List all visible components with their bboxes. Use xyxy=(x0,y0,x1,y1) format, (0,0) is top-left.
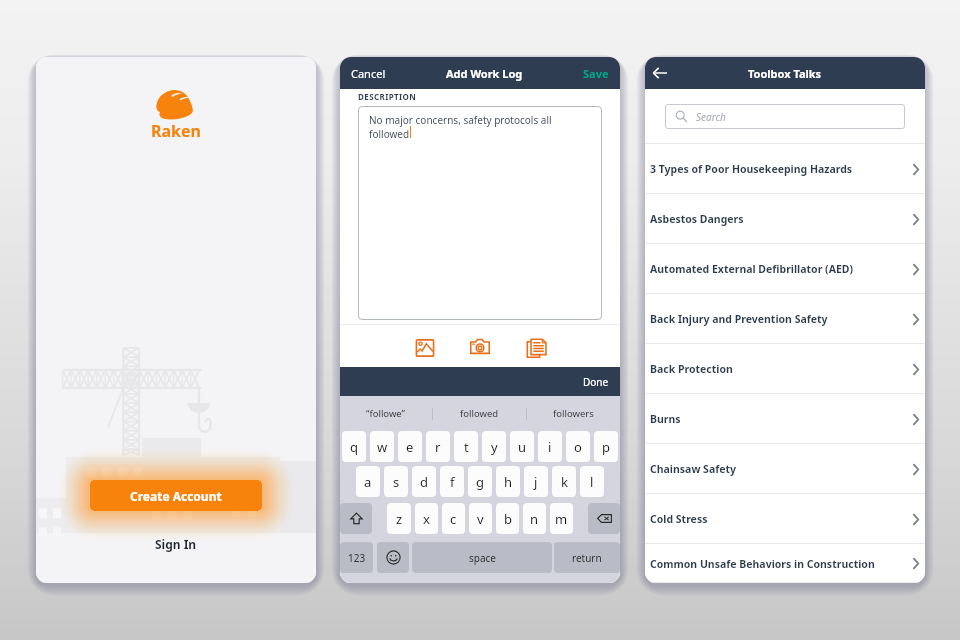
button[interactable]: s xyxy=(384,466,408,497)
staticText: m xyxy=(555,510,568,528)
button[interactable]: v xyxy=(469,503,492,534)
button[interactable]: Create Account xyxy=(90,480,262,511)
staticText: g xyxy=(476,473,484,491)
staticText: o xyxy=(574,438,582,456)
staticText: DESCRIPTION xyxy=(358,91,417,102)
button[interactable]: Back Injury and Prevention Safety xyxy=(645,294,925,344)
staticText: y xyxy=(491,438,498,456)
button[interactable]: j xyxy=(524,466,548,497)
button[interactable]: Asbestos Dangers xyxy=(645,194,925,244)
button[interactable]: d xyxy=(412,466,436,497)
staticText: e xyxy=(406,438,414,456)
staticText: Cold Stress xyxy=(650,512,907,526)
button[interactable]: x xyxy=(415,503,438,534)
staticText: Chainsaw Safety xyxy=(650,462,907,476)
staticText: p xyxy=(602,438,610,456)
staticText: 3 Types of Poor Housekeeping Hazards xyxy=(650,162,907,176)
staticText: j xyxy=(534,473,538,491)
button[interactable]: b xyxy=(496,503,519,534)
button[interactable]: backspace xyxy=(588,503,620,534)
button[interactable]: Search xyxy=(665,104,905,129)
button[interactable]: Automated External Defibrillator (AED) xyxy=(645,244,925,294)
staticText: Back Protection xyxy=(650,362,907,376)
staticText: Add Work Log xyxy=(446,66,523,81)
staticText: r xyxy=(435,438,441,456)
staticText: u xyxy=(518,438,527,456)
button[interactable]: Back Protection xyxy=(645,344,925,394)
button[interactable]: i xyxy=(538,431,562,462)
button[interactable]: Add photo xyxy=(414,337,436,359)
button[interactable]: Back xyxy=(645,58,675,88)
staticText: d xyxy=(420,473,428,491)
button[interactable]: l xyxy=(580,466,604,497)
staticText: Done xyxy=(583,375,609,389)
button[interactable]: z xyxy=(387,503,411,534)
button[interactable]: c xyxy=(442,503,465,534)
staticText: x xyxy=(423,510,430,528)
button[interactable]: g xyxy=(468,466,492,497)
button[interactable]: a xyxy=(356,466,380,497)
button[interactable]: Cancel xyxy=(340,62,394,85)
button[interactable]: q xyxy=(342,431,366,462)
staticText: t xyxy=(464,438,469,456)
button[interactable]: Cold Stress xyxy=(645,494,925,544)
button[interactable]: followers xyxy=(527,396,620,431)
staticText: Back Injury and Prevention Safety xyxy=(650,312,907,326)
staticText: l xyxy=(590,473,594,491)
button[interactable]: 123 xyxy=(340,542,373,573)
staticText: n xyxy=(530,510,539,528)
button[interactable]: Chainsaw Safety xyxy=(645,444,925,494)
staticText: space xyxy=(469,551,496,565)
button[interactable]: k xyxy=(552,466,576,497)
staticText: b xyxy=(504,510,512,528)
button[interactable]: m xyxy=(550,503,573,534)
button[interactable]: Take photo xyxy=(469,336,491,358)
button[interactable]: e xyxy=(398,431,422,462)
staticText: i xyxy=(548,438,552,456)
staticText: Common Unsafe Behaviors in Construction xyxy=(650,557,907,571)
button[interactable]: Done xyxy=(573,371,620,393)
button[interactable]: Sign In xyxy=(141,534,211,554)
staticText: Search xyxy=(696,110,726,124)
button[interactable]: o xyxy=(566,431,590,462)
button[interactable]: Save xyxy=(575,62,620,85)
staticText: f xyxy=(450,473,455,491)
button[interactable]: return xyxy=(554,542,620,573)
button[interactable]: y xyxy=(482,431,506,462)
button[interactable]: u xyxy=(510,431,534,462)
staticText: Burns xyxy=(650,412,907,426)
button[interactable]: “followe” xyxy=(340,396,432,431)
staticText: followers xyxy=(553,407,594,420)
staticText: Sign In xyxy=(155,536,197,552)
staticText: “followe” xyxy=(366,407,406,420)
button[interactable]: shift xyxy=(340,503,372,534)
staticText: return xyxy=(572,551,602,565)
staticText: h xyxy=(504,473,513,491)
button[interactable]: f xyxy=(440,466,464,497)
staticText: v xyxy=(477,510,484,528)
staticText: Asbestos Dangers xyxy=(650,212,907,226)
staticText: Automated External Defibrillator (AED) xyxy=(650,262,907,276)
button[interactable]: Common Unsafe Behaviors in Construction xyxy=(645,544,925,583)
button[interactable]: space xyxy=(412,542,552,573)
button[interactable]: p xyxy=(594,431,618,462)
button[interactable]: w xyxy=(370,431,394,462)
button[interactable]: emoji xyxy=(377,542,409,573)
staticText: No major concerns, safety protocols all … xyxy=(369,113,584,141)
button[interactable]: followed xyxy=(433,396,526,431)
staticText: c xyxy=(450,510,457,528)
staticText: Raken xyxy=(151,120,201,142)
staticText: w xyxy=(377,438,388,456)
button[interactable]: n xyxy=(523,503,546,534)
staticText: Cancel xyxy=(351,66,386,81)
staticText: 123 xyxy=(348,551,366,565)
staticText: q xyxy=(350,438,358,456)
button[interactable]: h xyxy=(496,466,520,497)
staticText: Create Account xyxy=(130,488,222,504)
button[interactable]: Attach document xyxy=(526,337,548,359)
button[interactable]: t xyxy=(454,431,478,462)
button[interactable]: r xyxy=(426,431,450,462)
staticText: s xyxy=(393,473,400,491)
button[interactable]: 3 Types of Poor Housekeeping Hazards xyxy=(645,144,925,194)
button[interactable]: Burns xyxy=(645,394,925,444)
